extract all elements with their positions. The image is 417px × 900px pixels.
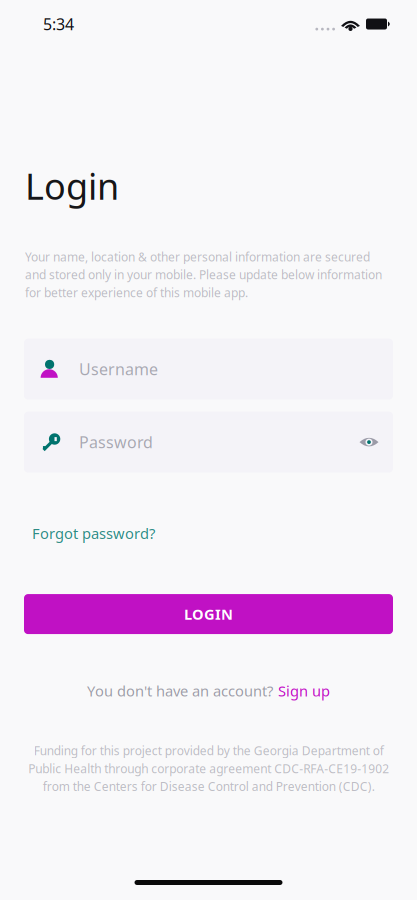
button[interactable]: Sign up [278,681,330,701]
staticText: Sign up [278,681,330,701]
staticText: Your name, location & other personal inf… [25,249,382,301]
button[interactable]: Forgot password? [32,524,155,543]
staticText: 5:34 [43,13,74,35]
button[interactable]: LOGIN [24,594,393,634]
button[interactable]: Show password [345,418,393,466]
staticText: Funding for this project provided by the… [28,743,389,794]
staticText: Username [79,358,158,380]
staticText: Forgot password? [32,524,155,543]
staticText: Login [25,162,119,210]
staticText: Password [79,431,153,453]
staticText: LOGIN [184,604,233,624]
staticText: You don't have an account? [87,681,273,701]
